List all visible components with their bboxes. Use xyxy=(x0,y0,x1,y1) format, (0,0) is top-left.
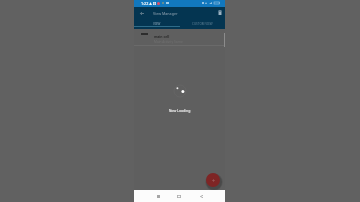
staticText: View Manager xyxy=(153,11,178,16)
button[interactable]: CUSTOM VIEW xyxy=(179,19,225,29)
button[interactable]: Recents xyxy=(153,190,163,202)
staticText: 1:22 xyxy=(141,1,149,6)
staticText: CUSTOM VIEW xyxy=(192,22,213,26)
staticText: Main Activity Scene xyxy=(154,40,183,44)
staticText: VIEW xyxy=(153,22,161,26)
button[interactable]: Navigate up xyxy=(136,7,148,19)
button[interactable]: main cell xyxy=(134,29,225,46)
staticText: Now Loading xyxy=(134,108,225,113)
button[interactable]: Add xyxy=(206,173,220,187)
button[interactable]: Back xyxy=(196,190,206,202)
button[interactable]: VIEW xyxy=(134,19,179,29)
staticText: main cell xyxy=(154,34,170,39)
button[interactable]: Delete xyxy=(214,7,225,18)
button[interactable]: Home xyxy=(174,190,184,202)
